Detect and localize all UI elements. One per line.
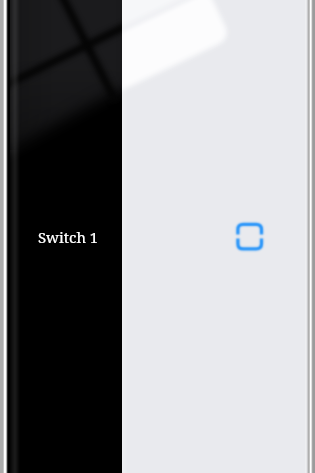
button[interactable]: Switch 1 rocker — [9, 0, 122, 473]
button[interactable]: Toggle Switch 1 — [122, 0, 306, 473]
staticText: Switch 1 — [38, 227, 99, 247]
